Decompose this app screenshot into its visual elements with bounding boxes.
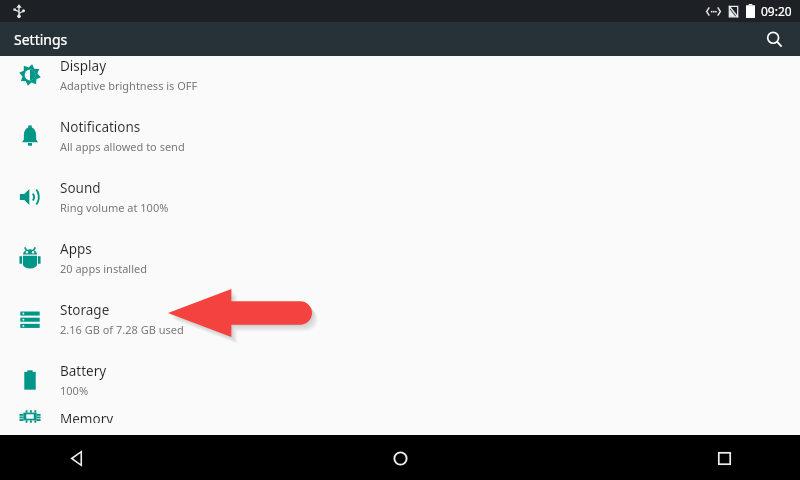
button[interactable]: Sound xyxy=(0,166,800,227)
staticText: Notifications xyxy=(60,118,141,136)
button[interactable]: Notifications xyxy=(0,105,800,166)
staticText: Battery xyxy=(60,362,107,380)
staticText: Storage xyxy=(60,301,110,319)
button[interactable]: Display xyxy=(0,44,800,105)
button[interactable]: Memory xyxy=(0,410,800,423)
button[interactable]: Back xyxy=(56,438,96,478)
staticText: 100% xyxy=(60,383,89,398)
button[interactable]: Home xyxy=(380,438,420,478)
staticText: 20 apps installed xyxy=(60,261,147,276)
button[interactable]: Apps xyxy=(0,227,800,288)
staticText: All apps allowed to send xyxy=(60,139,185,154)
staticText: Settings xyxy=(14,30,68,49)
staticText: Display xyxy=(60,57,107,75)
staticText: Adaptive brightness is OFF xyxy=(60,78,198,93)
staticText: 09:20 xyxy=(761,3,792,19)
staticText: Ring volume at 100% xyxy=(60,200,169,215)
staticText: 2.16 GB of 7.28 GB used xyxy=(60,322,184,337)
button[interactable]: Storage xyxy=(0,288,800,349)
staticText: Sound xyxy=(60,179,101,197)
button[interactable]: Recent apps xyxy=(704,438,744,478)
button[interactable]: Search xyxy=(758,23,790,55)
staticText: Memory xyxy=(60,410,114,423)
button[interactable]: Battery xyxy=(0,349,800,410)
staticText: Apps xyxy=(60,240,92,258)
